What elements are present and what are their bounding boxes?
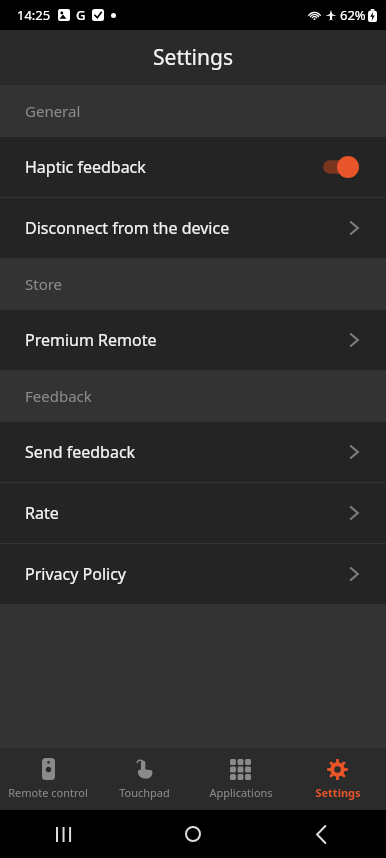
staticText: Settings xyxy=(153,43,233,72)
staticText: G xyxy=(76,6,86,24)
button[interactable]: Back xyxy=(257,810,386,858)
button[interactable]: Disconnect from the device xyxy=(0,198,386,258)
staticText: Remote control xyxy=(8,785,88,800)
button[interactable]: Touchpad xyxy=(96,748,192,810)
button[interactable]: Applications xyxy=(192,748,289,810)
button[interactable]: Home xyxy=(128,810,257,858)
button[interactable]: Recents xyxy=(0,810,128,858)
staticText: Store xyxy=(25,274,63,294)
button[interactable]: Rate xyxy=(0,483,386,543)
button[interactable]: Privacy Policy xyxy=(0,544,386,604)
staticText: 14:25 xyxy=(17,6,51,24)
button[interactable]: Send feedback xyxy=(0,422,386,482)
button[interactable]: Remote control xyxy=(0,748,96,810)
staticText: Send feedback xyxy=(25,441,136,463)
other: Settings xyxy=(327,759,348,780)
staticText: Haptic feedback xyxy=(25,156,146,178)
staticText: Applications xyxy=(209,785,273,800)
staticText: Settings xyxy=(315,785,361,800)
staticText: Touchpad xyxy=(119,785,170,800)
staticText: Privacy Policy xyxy=(25,563,126,585)
button[interactable]: Haptic feedback xyxy=(0,137,386,197)
button[interactable]: Premium Remote xyxy=(0,310,386,370)
button[interactable]: Settings xyxy=(289,748,386,810)
staticText: 62% xyxy=(340,6,366,24)
staticText: Feedback xyxy=(25,386,92,406)
staticText: Premium Remote xyxy=(25,329,157,351)
staticText: Disconnect from the device xyxy=(25,217,230,239)
staticText: General xyxy=(25,101,81,121)
staticText: Rate xyxy=(25,502,59,524)
